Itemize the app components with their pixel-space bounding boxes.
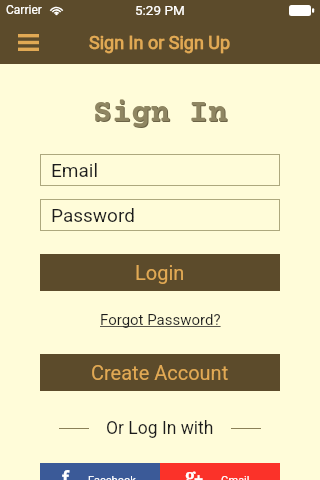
staticText: g <box>185 463 196 480</box>
staticText: Password <box>51 204 135 226</box>
button[interactable]: Password <box>40 199 280 231</box>
staticText: Or Log In with <box>106 418 214 439</box>
staticText: Forgot Password? <box>100 311 221 329</box>
button[interactable]: Menu <box>0 20 44 64</box>
button[interactable]: f <box>40 463 160 480</box>
staticText: Sign In or Sign Up <box>89 32 231 53</box>
staticText: Create Account <box>91 361 229 384</box>
button[interactable]: Login <box>40 254 280 291</box>
staticText: Sign In <box>1 97 320 133</box>
button[interactable]: Create Account <box>40 354 280 391</box>
staticText: + <box>194 468 204 480</box>
staticText: Login <box>135 261 185 284</box>
staticText: f <box>62 467 69 480</box>
staticText: Gmail <box>221 474 250 480</box>
staticText: Carrier <box>6 3 42 17</box>
staticText: Email <box>51 159 99 181</box>
staticText: Facebook <box>88 474 136 480</box>
button[interactable]: g <box>160 463 280 480</box>
staticText: Sign In <box>0 96 320 132</box>
staticText: 5:29 PM <box>135 2 185 18</box>
button[interactable]: Forgot Password? <box>94 309 227 331</box>
button[interactable]: Email <box>40 154 280 186</box>
